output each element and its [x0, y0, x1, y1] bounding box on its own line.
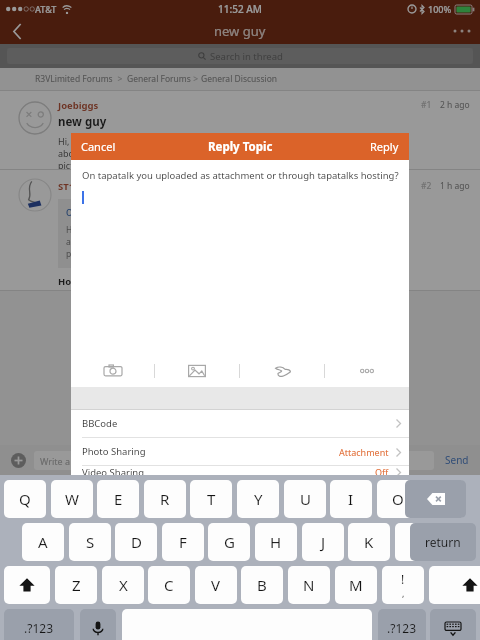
- staticText: Photo Sharing: [82, 445, 146, 458]
- button[interactable]: R: [144, 480, 186, 518]
- staticText: Originally posted by Joebiggs: [66, 207, 185, 219]
- button[interactable]: Shift: [447, 566, 480, 604]
- staticText: Reply: [370, 139, 399, 154]
- staticText: #2: [421, 180, 432, 192]
- staticText: R3VLimited Forums: [35, 73, 113, 85]
- staticText: BBCode: [82, 417, 118, 430]
- staticText: Video Sharing: [82, 466, 145, 478]
- staticText: General Forums: [127, 73, 191, 85]
- button[interactable]: Dictation: [80, 609, 116, 640]
- button[interactable]: M: [335, 566, 377, 604]
- button[interactable]: Share to Twitter: [240, 355, 324, 387]
- button[interactable]: D: [115, 523, 157, 561]
- button[interactable]: ?: [429, 566, 471, 604]
- button[interactable]: O: [377, 480, 419, 518]
- staticText: new guy: [58, 114, 107, 130]
- button[interactable]: !: [382, 566, 424, 604]
- staticText: Off: [375, 466, 389, 478]
- staticText: A: [38, 532, 48, 552]
- button[interactable]: B: [241, 566, 283, 604]
- button[interactable]: G: [208, 523, 250, 561]
- button[interactable]: L: [395, 523, 437, 561]
- staticText: 100%: [428, 3, 452, 15]
- staticText: B: [257, 575, 267, 595]
- staticText: #1: [421, 99, 432, 111]
- staticText: Hi, my name is Joe and I just picked up …: [66, 224, 269, 260]
- button[interactable]: Write a reply…: [40, 451, 428, 470]
- staticText: V: [211, 575, 221, 595]
- button[interactable]: Video Sharing: [71, 466, 409, 478]
- staticText: Y: [254, 489, 263, 509]
- staticText: R: [160, 489, 170, 509]
- staticText: .?123: [387, 620, 417, 636]
- staticText: >: [191, 73, 201, 85]
- button[interactable]: Y: [237, 480, 279, 518]
- button[interactable]: .?123: [378, 609, 426, 640]
- staticText: P: [439, 489, 449, 509]
- staticText: Send: [445, 453, 469, 467]
- button[interactable]: T: [190, 480, 232, 518]
- button[interactable]: I: [330, 480, 372, 518]
- button[interactable]: Photo library: [155, 355, 239, 387]
- button[interactable]: More: [325, 355, 409, 387]
- button[interactable]: BBCode: [71, 410, 409, 437]
- button[interactable]: U: [284, 480, 326, 518]
- button[interactable]: E: [97, 480, 139, 518]
- button[interactable]: More options: [444, 18, 480, 44]
- staticText: Attachment: [339, 446, 389, 458]
- button[interactable]: Search in thread: [7, 48, 473, 64]
- button[interactable]: Shift: [4, 566, 50, 604]
- button[interactable]: J: [302, 523, 344, 561]
- button[interactable]: W: [51, 480, 93, 518]
- staticText: C: [164, 575, 174, 595]
- button[interactable]: Add attachment: [8, 450, 28, 470]
- staticText: 2 h ago: [440, 99, 470, 111]
- button[interactable]: H: [255, 523, 297, 561]
- staticText: I: [348, 489, 354, 509]
- button[interactable]: return: [410, 523, 476, 561]
- button[interactable]: N: [288, 566, 330, 604]
- staticText: new guy: [214, 22, 266, 40]
- button[interactable]: C: [148, 566, 190, 604]
- button[interactable]: Backspace: [405, 480, 466, 518]
- staticText: N: [303, 575, 315, 595]
- button[interactable]: Z: [55, 566, 97, 604]
- staticText: X: [119, 575, 128, 595]
- staticText: S: [86, 532, 95, 552]
- button[interactable]: K: [348, 523, 390, 561]
- staticText: Search in thread: [210, 50, 283, 63]
- staticText: ,: [402, 587, 405, 599]
- button[interactable]: V: [195, 566, 237, 604]
- button[interactable]: Hide keyboard: [430, 609, 476, 640]
- button[interactable]: Back: [0, 18, 34, 44]
- staticText: Hi, my name is Joe and I just picked up …: [58, 135, 273, 169]
- button[interactable]: Cancel: [81, 139, 116, 154]
- button[interactable]: Q: [4, 480, 46, 518]
- button[interactable]: X: [102, 566, 144, 604]
- button[interactable]: S: [69, 523, 111, 561]
- button[interactable]: Photo Sharing: [71, 438, 409, 465]
- staticText: return: [425, 534, 461, 550]
- button[interactable]: Send: [442, 450, 472, 470]
- button[interactable]: F: [162, 523, 204, 561]
- button[interactable]: Camera: [71, 355, 154, 387]
- staticText: W: [65, 489, 79, 509]
- button[interactable]: P: [423, 480, 465, 518]
- staticText: O: [392, 489, 404, 509]
- staticText: .?123: [24, 620, 54, 636]
- staticText: Joebiggs: [58, 99, 99, 112]
- button[interactable]: .?123: [4, 609, 74, 640]
- staticText: !: [401, 571, 405, 587]
- staticText: F: [179, 532, 187, 552]
- staticText: ST1: [58, 180, 75, 193]
- staticText: Hosting or attachment?: [58, 275, 171, 288]
- staticText: Write a reply…: [40, 455, 101, 467]
- staticText: G: [224, 532, 235, 552]
- staticText: Cancel: [81, 139, 116, 154]
- button[interactable]: Reply: [370, 139, 399, 154]
- button[interactable]: A: [22, 523, 64, 561]
- staticText: >: [113, 73, 127, 85]
- staticText: K: [364, 532, 374, 552]
- staticText: On tapatalk you uploaded as attachment o…: [82, 169, 399, 182]
